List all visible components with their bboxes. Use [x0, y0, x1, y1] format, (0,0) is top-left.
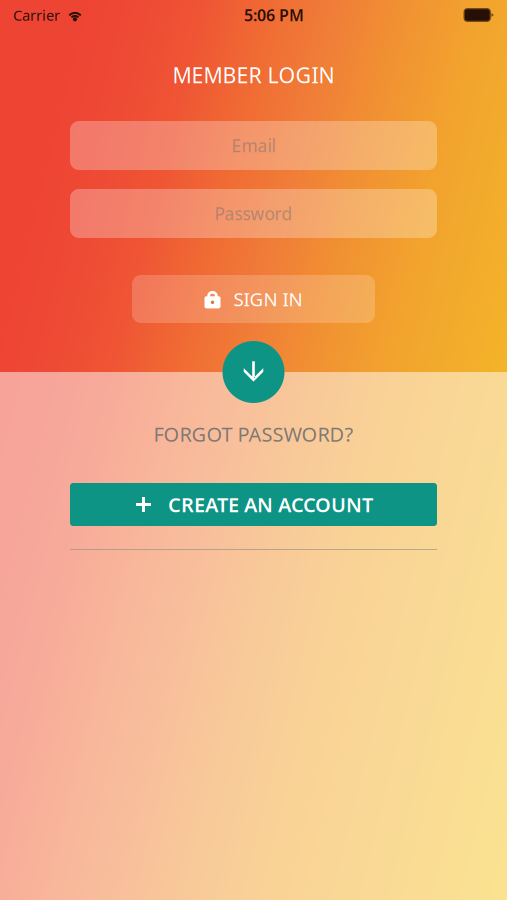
staticText: CREATE AN ACCOUNT: [168, 491, 373, 518]
staticText: MEMBER LOGIN: [172, 61, 334, 89]
button[interactable]: Scroll down: [222, 341, 284, 403]
staticText: Email: [231, 134, 275, 157]
button[interactable]: CREATE AN ACCOUNT: [70, 483, 437, 526]
button[interactable]: Email: [70, 121, 437, 170]
button[interactable]: FORGOT PASSWORD?: [70, 416, 437, 452]
staticText: Password: [214, 202, 292, 225]
button[interactable]: Password: [70, 189, 437, 238]
staticText: FORGOT PASSWORD?: [153, 421, 353, 447]
staticText: SIGN IN: [233, 287, 302, 311]
button[interactable]: SIGN IN: [132, 275, 375, 323]
staticText: 5:06 PM: [244, 4, 304, 26]
staticText: Carrier: [13, 5, 60, 25]
